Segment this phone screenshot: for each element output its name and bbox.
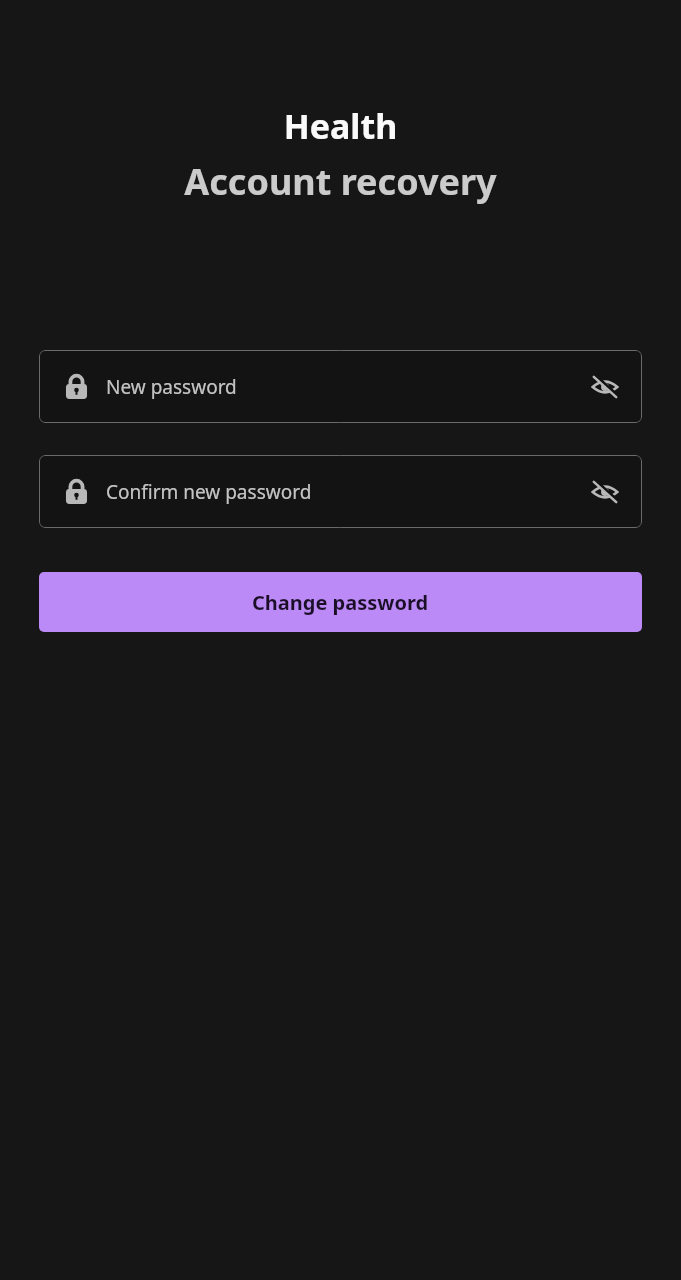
button[interactable]: Show password (584, 366, 626, 408)
button[interactable]: Show password (584, 471, 626, 513)
button[interactable]: Change password (39, 572, 642, 632)
button[interactable]: New password (39, 350, 642, 423)
staticText: Health (0, 103, 681, 149)
staticText: New password (106, 374, 237, 400)
staticText: Change password (252, 589, 429, 616)
button[interactable]: Confirm new password (39, 455, 642, 528)
staticText: Account recovery (0, 157, 681, 206)
staticText: Confirm new password (106, 479, 312, 505)
